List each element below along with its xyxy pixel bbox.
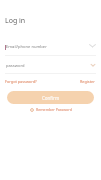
staticText: Email/phone number	[6, 44, 47, 50]
button[interactable]: Email/phone number	[0, 38, 101, 52]
button[interactable]: Confirm	[7, 91, 94, 104]
staticText: Remember Password	[36, 107, 72, 112]
button[interactable]: Forgot password?	[5, 79, 37, 84]
button[interactable]: password	[0, 57, 101, 71]
button[interactable]: Show password options	[87, 59, 98, 70]
button[interactable]: Show saved accounts	[87, 40, 98, 51]
staticText: password	[6, 63, 25, 69]
button[interactable]: Remember Password	[30, 107, 72, 112]
staticText: Log in	[5, 16, 26, 26]
button[interactable]: Register	[80, 79, 95, 84]
staticText: Confirm	[42, 95, 60, 101]
